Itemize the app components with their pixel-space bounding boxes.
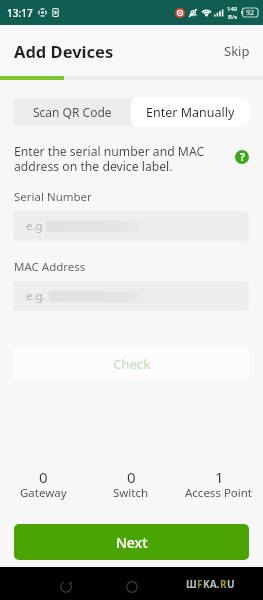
- staticText: 0: [127, 467, 136, 487]
- staticText: 13:17: [7, 6, 33, 20]
- button[interactable]: e.g: [14, 211, 249, 241]
- button[interactable]: Enter Manually: [131, 98, 249, 126]
- staticText: Switch: [113, 485, 149, 501]
- staticText: Scan QR Code: [33, 104, 112, 120]
- staticText: Check: [113, 355, 151, 373]
- button[interactable]: 1: [175, 467, 263, 503]
- button[interactable]: Next: [14, 524, 249, 560]
- button[interactable]: Home: [116, 571, 148, 600]
- staticText: U: [227, 577, 235, 591]
- staticText: KA.: [203, 577, 220, 591]
- staticText: R: [220, 577, 227, 591]
- staticText: e.g.: [26, 288, 46, 304]
- button[interactable]: Help: [235, 150, 249, 164]
- button[interactable]: Skip: [220, 38, 254, 64]
- staticText: 92: [246, 8, 255, 17]
- staticText: ?: [240, 150, 245, 164]
- staticText: Serial Number: [14, 189, 92, 205]
- staticText: Next: [116, 533, 148, 552]
- button[interactable]: Check: [14, 347, 249, 380]
- staticText: Enter Manually: [146, 104, 235, 121]
- staticText: Skip: [224, 42, 250, 60]
- staticText: MAC Address: [14, 259, 86, 275]
- staticText: e.g: [26, 218, 43, 234]
- staticText: Add Devices: [14, 40, 114, 62]
- staticText: F: [197, 577, 203, 591]
- button[interactable]: 0: [0, 467, 87, 503]
- staticText: B/s: [228, 13, 238, 21]
- staticText: 0: [39, 467, 48, 487]
- staticText: Enter the serial number and MAC address …: [14, 143, 205, 174]
- staticText: 149: [227, 5, 238, 13]
- button[interactable]: Scan QR Code: [14, 98, 131, 126]
- staticText: Access Point: [185, 485, 253, 501]
- button[interactable]: e.g.: [14, 281, 249, 311]
- staticText: Ш: [186, 577, 197, 591]
- button[interactable]: Recent apps: [186, 576, 258, 592]
- staticText: Gateway: [20, 485, 67, 501]
- staticText: 1: [215, 467, 224, 487]
- button[interactable]: Back: [50, 571, 82, 600]
- button[interactable]: 0: [87, 467, 175, 503]
